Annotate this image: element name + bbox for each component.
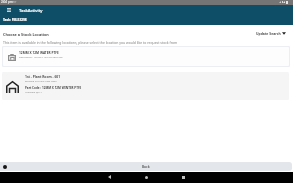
- staticText: Back: [142, 165, 150, 169]
- button[interactable]: Back: [0, 162, 292, 171]
- button[interactable]: Choose a Stock Location: [3, 32, 49, 37]
- staticText: Part Code : 12MM X 12M WINTER PTFE: [25, 86, 82, 90]
- staticText: Update Search: [256, 31, 281, 36]
- staticText: This item is available in the following …: [3, 40, 178, 45]
- staticText: 12MM X 12M WATER PTFE: [19, 51, 59, 55]
- button[interactable]: Update Search: [256, 31, 286, 36]
- staticText: 2:04 pm: [1, 0, 13, 4]
- staticText: 1st - Plant Room - 601: [25, 74, 61, 78]
- button[interactable]: Recent apps: [175, 172, 192, 182]
- staticText: TaskActivity: [19, 8, 43, 14]
- staticText: Available Qty: 1: [25, 90, 43, 93]
- staticText: mr: [12, 0, 17, 4]
- button[interactable]: Home: [138, 172, 155, 182]
- button[interactable]: 1st - Plant Room - 601: [2, 72, 289, 100]
- staticText: Task: FM-53298: [3, 18, 27, 22]
- button[interactable]: Back: [101, 172, 118, 182]
- staticText: Description : 12MM X 12M WATER PTFE: [19, 55, 63, 58]
- button[interactable]: Open navigation menu: [4, 5, 13, 14]
- staticText: Building FVT Falls New Town: [25, 79, 57, 82]
- button[interactable]: 12MM X 12M WATER PTFE: [3, 47, 289, 66]
